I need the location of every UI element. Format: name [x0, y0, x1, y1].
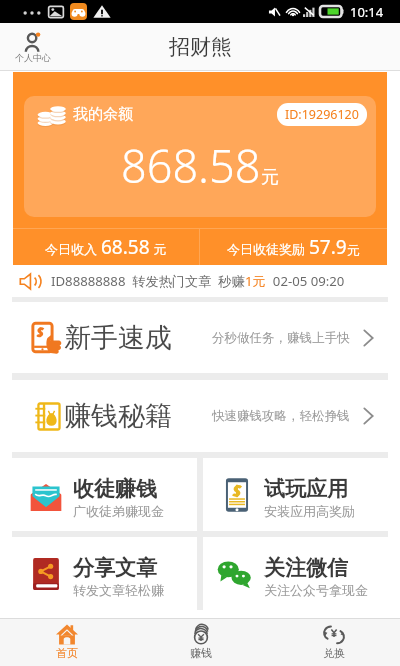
button[interactable]: 试玩应用: [203, 458, 388, 531]
staticText: 今日收徒奖励: [227, 240, 309, 258]
button[interactable]: 今日收徒奖励: [200, 229, 387, 265]
staticText: 新手速成: [64, 321, 172, 355]
staticText: 57.9: [309, 234, 347, 260]
staticText: 868.58: [121, 135, 261, 196]
staticText: 关注微信: [264, 555, 348, 581]
button[interactable]: 赚钱: [134, 618, 267, 666]
staticText: 转发文章轻松赚: [73, 582, 164, 598]
staticText: ID88888888 转发热门文章 秒赚: [51, 272, 245, 290]
button[interactable]: 收徒赚钱: [12, 458, 197, 531]
button[interactable]: ID88888888 转发热门文章 秒赚: [0, 265, 400, 297]
staticText: 分享文章: [73, 555, 157, 581]
button[interactable]: 关注微信: [203, 537, 388, 610]
staticText: 我的余额: [73, 105, 133, 124]
button[interactable]: ID:19296120: [277, 103, 367, 126]
button[interactable]: 新手速成: [12, 302, 388, 373]
staticText: 招财熊: [169, 34, 232, 60]
staticText: ID:19296120: [285, 106, 359, 123]
staticText: 02-05 09:20: [266, 272, 345, 290]
staticText: 今日收入: [45, 240, 101, 258]
button[interactable]: 赚钱秘籍: [12, 380, 388, 452]
button[interactable]: 个人中心: [13, 32, 53, 63]
staticText: 分秒做任务，赚钱上手快: [212, 330, 350, 346]
staticText: 安装应用高奖励: [264, 503, 355, 519]
button[interactable]: 分享文章: [12, 537, 197, 610]
staticText: 首页: [56, 646, 78, 660]
staticText: 68.58: [101, 234, 150, 260]
staticText: 元: [150, 240, 167, 258]
staticText: 试玩应用: [264, 476, 348, 502]
button[interactable]: 首页: [0, 618, 134, 666]
staticText: 个人中心: [15, 52, 51, 63]
staticText: 10:14: [350, 3, 384, 21]
button[interactable]: 兑换: [267, 618, 400, 666]
staticText: 1元: [245, 272, 266, 290]
staticText: 兑换: [323, 646, 345, 660]
staticText: 赚钱: [190, 646, 212, 660]
staticText: 关注公众号拿现金: [264, 582, 368, 598]
staticText: 赚钱秘籍: [64, 399, 172, 433]
staticText: 快速赚钱攻略，轻松挣钱: [212, 408, 350, 424]
staticText: 广收徒弟赚现金: [73, 503, 164, 519]
staticText: 收徒赚钱: [73, 476, 157, 502]
button[interactable]: 今日收入: [13, 229, 199, 265]
staticText: 元: [347, 242, 360, 258]
staticText: 元: [261, 166, 279, 189]
